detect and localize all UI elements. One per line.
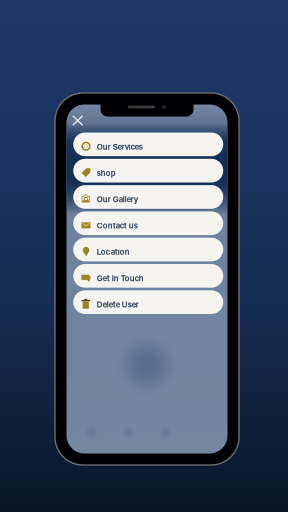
- button[interactable]: Delete User: [73, 290, 223, 314]
- staticText: Our Gallery: [97, 194, 138, 204]
- button[interactable]: Contact us: [73, 211, 223, 235]
- staticText: Our Services: [97, 142, 143, 152]
- staticText: Location: [97, 247, 130, 257]
- button[interactable]: Close: [67, 110, 88, 131]
- button[interactable]: Location: [73, 238, 223, 261]
- button[interactable]: Our Gallery: [73, 185, 223, 209]
- staticText: Delete User: [97, 300, 139, 309]
- staticText: Contact us: [97, 221, 138, 230]
- staticText: shop: [97, 168, 116, 178]
- button[interactable]: Get In Touch: [73, 264, 223, 288]
- staticText: Get In Touch: [97, 273, 144, 283]
- button[interactable]: Our Services: [73, 132, 223, 156]
- button[interactable]: shop: [73, 159, 223, 182]
